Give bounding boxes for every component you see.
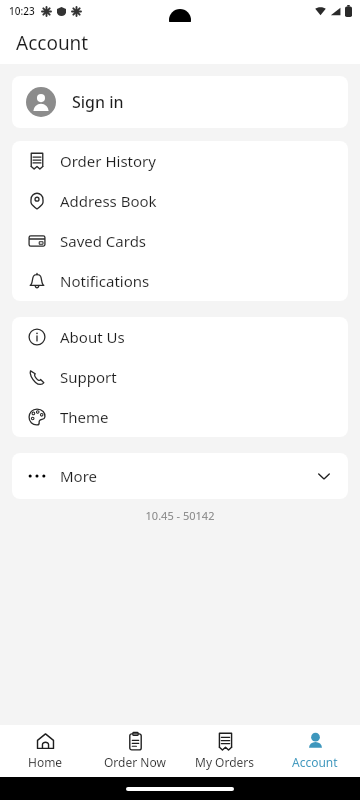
staticText: Home bbox=[28, 754, 63, 770]
staticText: Sign in bbox=[72, 91, 124, 113]
button[interactable]: Address Book bbox=[12, 181, 348, 221]
button[interactable]: Saved Cards bbox=[12, 221, 348, 261]
button[interactable]: Order Now bbox=[90, 725, 180, 777]
staticText: Account bbox=[16, 30, 89, 56]
staticText: Support bbox=[60, 367, 117, 387]
button[interactable]: Theme bbox=[12, 397, 348, 437]
staticText: Address Book bbox=[60, 191, 157, 211]
staticText: Order Now bbox=[104, 754, 166, 770]
staticText: 10.45 - 50142 bbox=[0, 508, 360, 523]
staticText: About Us bbox=[60, 327, 125, 347]
button[interactable]: Account bbox=[270, 725, 360, 777]
button[interactable]: About Us bbox=[12, 317, 348, 357]
button[interactable]: Sign in bbox=[12, 76, 348, 128]
staticText: Saved Cards bbox=[60, 231, 147, 251]
button[interactable]: Order History bbox=[12, 141, 348, 181]
staticText: Notifications bbox=[60, 271, 150, 291]
button[interactable]: Support bbox=[12, 357, 348, 397]
staticText: My Orders bbox=[195, 754, 255, 770]
staticText: 10:23 bbox=[9, 4, 35, 18]
staticText: Theme bbox=[60, 407, 109, 427]
staticText: Order History bbox=[60, 151, 156, 171]
staticText: Account bbox=[292, 754, 338, 770]
button[interactable]: Notifications bbox=[12, 261, 348, 301]
staticText: More bbox=[60, 466, 98, 486]
button[interactable]: My Orders bbox=[180, 725, 270, 777]
button[interactable]: Home bbox=[0, 725, 90, 777]
button[interactable]: More bbox=[12, 453, 348, 499]
